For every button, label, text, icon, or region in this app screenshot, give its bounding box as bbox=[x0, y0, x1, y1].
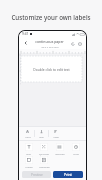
staticText: continuous paper bbox=[35, 39, 64, 44]
staticText: Time bbox=[73, 152, 79, 155]
button[interactable]: Align bbox=[50, 129, 61, 138]
staticText: 9:41 bbox=[22, 32, 29, 36]
button[interactable]: Template bbox=[36, 156, 52, 168]
staticText: 50.0 x 30.0 mm bbox=[41, 45, 59, 48]
button[interactable]: QR Code bbox=[36, 143, 52, 155]
staticText: Align bbox=[53, 135, 59, 138]
button[interactable]: Double click to edit text bbox=[21, 56, 82, 82]
staticText: Text bbox=[26, 152, 31, 155]
button[interactable]: Undo bbox=[69, 40, 76, 47]
staticText: Print bbox=[64, 172, 72, 177]
button[interactable]: Barcode bbox=[52, 143, 68, 155]
staticText: QR Code bbox=[39, 152, 49, 155]
staticText: Customize your own labels bbox=[11, 13, 91, 21]
button[interactable]: Frame bbox=[21, 156, 36, 168]
staticText: Double click to edit text bbox=[33, 67, 70, 71]
button[interactable]: Font bbox=[22, 129, 33, 138]
button[interactable]: Time bbox=[68, 143, 84, 155]
button[interactable]: Print bbox=[53, 171, 83, 178]
button[interactable]: Save bbox=[76, 40, 83, 47]
staticText: Preview bbox=[31, 173, 43, 177]
staticText: Template bbox=[39, 165, 50, 168]
button[interactable]: Preview bbox=[22, 171, 51, 178]
staticText: Barcode bbox=[55, 152, 65, 155]
button[interactable]: Back bbox=[22, 39, 30, 47]
staticText: Size bbox=[39, 135, 44, 138]
staticText: Frame bbox=[25, 165, 33, 168]
button[interactable]: Text bbox=[21, 143, 36, 155]
staticText: Font bbox=[25, 135, 31, 138]
button[interactable]: Size bbox=[36, 129, 47, 138]
